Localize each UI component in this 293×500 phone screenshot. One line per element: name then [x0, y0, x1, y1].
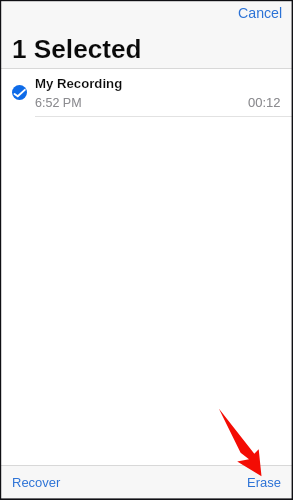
staticText: Erase	[247, 475, 281, 490]
staticText: 00:12	[248, 95, 281, 110]
staticText: 6:52 PM	[35, 96, 82, 110]
button[interactable]: Erase	[235, 469, 293, 498]
staticText: Recover	[12, 475, 61, 490]
staticText: Cancel	[238, 5, 283, 21]
button[interactable]: Cancel	[222, 0, 293, 29]
other: Arrow pointing to Erase	[0, 0, 293, 500]
button[interactable]: Selected	[0, 69, 293, 116]
other: Selected	[12, 85, 27, 100]
button[interactable]: Recover	[0, 469, 73, 498]
staticText: 1 Selected	[12, 34, 142, 63]
staticText: My Recording	[35, 76, 123, 91]
